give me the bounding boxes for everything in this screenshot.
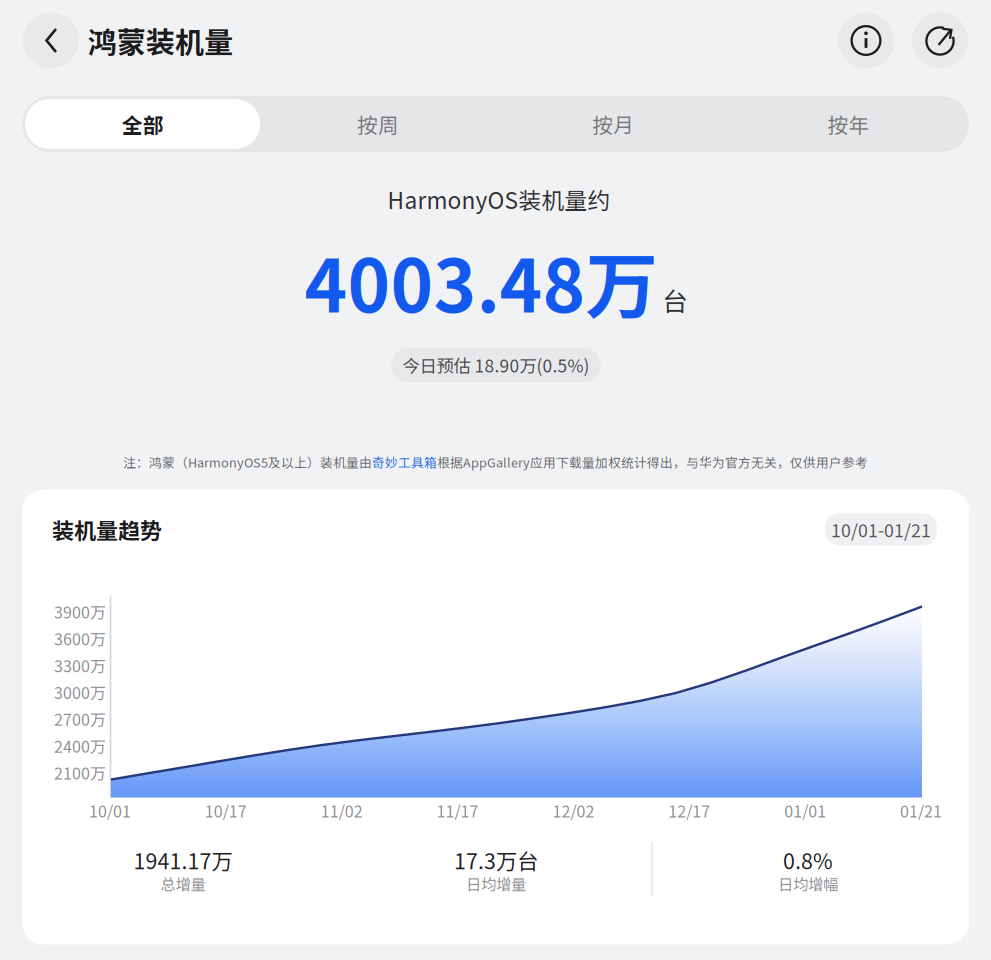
staticText: 11/17 — [437, 799, 479, 822]
staticText: 按年 — [827, 109, 869, 139]
staticText: 11/02 — [321, 799, 363, 822]
staticText: 台 — [662, 282, 687, 318]
staticText: 17.3万台 — [454, 844, 538, 875]
staticText: 今日预估 18.90万(0.5%) — [402, 352, 589, 378]
staticText: 01/01 — [784, 799, 826, 822]
staticText: 2700万 — [54, 707, 106, 730]
staticText: 3900万 — [54, 600, 106, 623]
staticText: HarmonyOS装机量约 — [387, 183, 610, 215]
staticText: 2100万 — [54, 761, 106, 784]
button[interactable]: 10/01-01/21 — [825, 513, 937, 545]
staticText: 0.8% — [783, 844, 833, 875]
staticText: 日均增幅 — [778, 872, 838, 894]
staticText: 根据AppGallery应用下载量加权统计得出，与华为官方无关，仅供用户参考 — [437, 453, 868, 471]
staticText: 3600万 — [54, 627, 106, 650]
staticText: 日均增量 — [466, 872, 526, 894]
staticText: 12/02 — [552, 799, 594, 822]
staticText: 总增量 — [160, 872, 205, 894]
staticText: 鸿蒙装机量 — [88, 20, 233, 61]
staticText: 10/17 — [205, 799, 247, 822]
staticText: 1941.17万 — [133, 844, 232, 875]
staticText: 10/01-01/21 — [831, 517, 931, 542]
staticText: 3300万 — [54, 654, 106, 677]
button[interactable]: 按年 — [731, 99, 966, 149]
button[interactable]: Back — [23, 12, 79, 68]
staticText: 按周 — [357, 109, 399, 139]
staticText: 奇妙工具箱 — [372, 453, 437, 471]
staticText: 按月 — [592, 109, 634, 139]
staticText: 装机量趋势 — [52, 514, 162, 545]
button[interactable]: 全部 — [25, 99, 260, 149]
button[interactable]: Share — [912, 12, 968, 68]
button[interactable]: 奇妙工具箱 — [372, 453, 437, 471]
staticText: 10/01 — [89, 799, 131, 822]
staticText: 注：鸿蒙（HarmonyOS5及以上）装机量由 — [123, 453, 372, 471]
button[interactable]: Information — [838, 12, 894, 68]
button[interactable]: 按周 — [260, 99, 495, 149]
button[interactable]: 按月 — [495, 99, 731, 149]
staticText: 4003.48万 — [304, 229, 657, 333]
staticText: 2400万 — [54, 734, 106, 757]
staticText: 3000万 — [54, 680, 106, 704]
staticText: 12/17 — [668, 799, 710, 822]
staticText: 全部 — [122, 109, 164, 139]
staticText: 01/21 — [900, 799, 942, 822]
